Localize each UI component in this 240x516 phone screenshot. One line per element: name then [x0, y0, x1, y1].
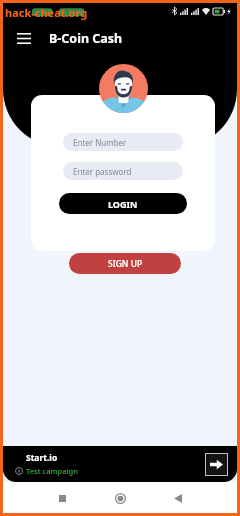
- button[interactable]: Open navigation menu: [14, 28, 34, 48]
- button[interactable]: Home: [105, 483, 135, 513]
- staticText: Start.io: [26, 452, 58, 464]
- button[interactable]: LOGIN: [59, 193, 187, 214]
- other: Profile avatar: [99, 64, 148, 113]
- button[interactable]: Open ad: [206, 454, 227, 475]
- staticText: LOGIN: [108, 198, 138, 210]
- staticText: SIGN UP: [108, 258, 143, 270]
- staticText: Test campaign: [26, 466, 78, 476]
- staticText: hack-cheat.org: [5, 5, 88, 20]
- button[interactable]: Enter Number: [63, 133, 183, 151]
- button[interactable]: Advertisement: Start.io Test campaign: [3, 446, 237, 482]
- button[interactable]: Recent apps: [47, 483, 77, 513]
- button[interactable]: SIGN UP: [69, 253, 181, 274]
- button[interactable]: Enter password: [63, 162, 183, 180]
- button[interactable]: Back: [163, 483, 193, 513]
- staticText: Enter Number: [73, 137, 127, 148]
- staticText: Enter password: [73, 166, 132, 177]
- staticText: B-Coin Cash: [49, 30, 123, 47]
